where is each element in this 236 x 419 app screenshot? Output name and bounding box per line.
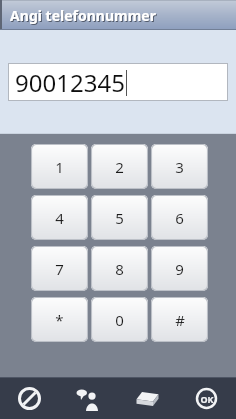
staticText: 0 bbox=[115, 310, 124, 330]
button[interactable]: 9 bbox=[151, 246, 208, 291]
staticText: 6 bbox=[175, 208, 184, 228]
button[interactable]: Cancel bbox=[0, 377, 59, 419]
staticText: 8 bbox=[115, 259, 124, 279]
staticText: 5 bbox=[115, 208, 124, 228]
staticText: OK bbox=[200, 393, 214, 405]
button[interactable]: # bbox=[151, 297, 208, 342]
button[interactable]: 3 bbox=[151, 144, 208, 189]
staticText: Angi telefonnummer bbox=[11, 7, 157, 26]
staticText: 9 bbox=[175, 259, 184, 279]
staticText: 90012345 bbox=[15, 66, 125, 99]
button[interactable]: OK bbox=[177, 377, 236, 419]
button[interactable]: 90012345 bbox=[9, 64, 227, 100]
staticText: * bbox=[55, 310, 64, 330]
button[interactable]: 5 bbox=[91, 195, 148, 240]
button[interactable]: * bbox=[31, 297, 88, 342]
staticText: 2 bbox=[115, 157, 124, 177]
staticText: Angi telefonnummer bbox=[10, 6, 156, 25]
button[interactable]: 4 bbox=[31, 195, 88, 240]
button[interactable]: 0 bbox=[91, 297, 148, 342]
staticText: 3 bbox=[175, 157, 184, 177]
staticText: 4 bbox=[55, 208, 64, 228]
button[interactable]: 2 bbox=[91, 144, 148, 189]
button[interactable]: 6 bbox=[151, 195, 208, 240]
button[interactable]: 1 bbox=[31, 144, 88, 189]
button[interactable]: 8 bbox=[91, 246, 148, 291]
button[interactable]: 7 bbox=[31, 246, 88, 291]
staticText: # bbox=[175, 310, 185, 330]
button[interactable]: Erase bbox=[118, 377, 177, 419]
staticText: 7 bbox=[55, 259, 64, 279]
button[interactable]: Contacts bbox=[59, 377, 118, 419]
staticText: 1 bbox=[55, 157, 64, 177]
